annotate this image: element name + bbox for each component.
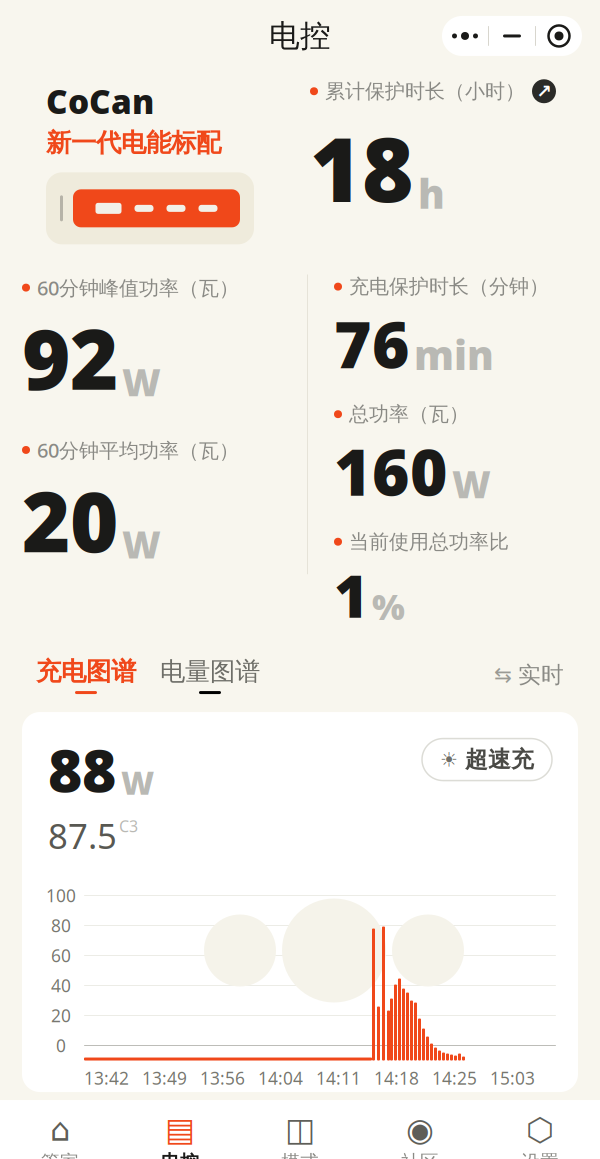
staticText: W bbox=[452, 459, 491, 509]
button[interactable]: Mini program menu bbox=[442, 16, 582, 56]
staticText: 14:25 bbox=[432, 1066, 477, 1089]
staticText: 电控 bbox=[161, 1151, 199, 1159]
staticText: 100 bbox=[46, 884, 76, 907]
staticText: 新一代电能标配 bbox=[46, 127, 221, 158]
staticText: 1 bbox=[334, 556, 368, 634]
button[interactable]: ☀ bbox=[422, 739, 552, 781]
staticText: W bbox=[122, 519, 161, 569]
staticText: 13:56 bbox=[200, 1066, 245, 1089]
staticText: CoCan bbox=[46, 79, 154, 123]
button[interactable]: ▤ bbox=[120, 1115, 240, 1159]
staticText: 管家 bbox=[41, 1151, 79, 1159]
staticText: 88 bbox=[48, 731, 116, 808]
staticText: ↗ bbox=[536, 81, 552, 102]
staticText: 模式 bbox=[281, 1151, 319, 1159]
staticText: 当前使用总功率比 bbox=[349, 529, 509, 554]
staticText: 60 bbox=[51, 944, 71, 967]
staticText: ⌂ bbox=[50, 1111, 70, 1148]
staticText: 14:18 bbox=[374, 1066, 419, 1089]
staticText: 充电图谱 bbox=[36, 656, 136, 687]
button[interactable]: 充电图谱 bbox=[36, 656, 136, 694]
staticText: 0 bbox=[56, 1034, 66, 1057]
staticText: 超速充 bbox=[465, 746, 534, 773]
button[interactable]: ⬡ bbox=[480, 1115, 600, 1159]
staticText: W bbox=[121, 761, 154, 803]
staticText: 电控 bbox=[269, 17, 331, 55]
staticText: ⇆ bbox=[494, 663, 512, 687]
button[interactable]: View details bbox=[532, 79, 556, 103]
staticText: 总功率（瓦） bbox=[349, 402, 469, 426]
staticText: 76 bbox=[334, 301, 410, 386]
staticText: 20 bbox=[51, 1004, 71, 1027]
staticText: ◫ bbox=[285, 1111, 315, 1148]
button[interactable]: ◉ bbox=[360, 1115, 480, 1159]
staticText: 累计保护时长（小时） bbox=[325, 79, 525, 104]
staticText: 60分钟平均功率（瓦） bbox=[37, 437, 239, 463]
staticText: h bbox=[418, 167, 445, 220]
staticText: 实时 bbox=[518, 661, 564, 689]
staticText: % bbox=[372, 583, 405, 629]
staticText: 14:04 bbox=[258, 1066, 303, 1089]
button[interactable]: 电量图谱 bbox=[136, 656, 260, 694]
staticText: 13:42 bbox=[84, 1066, 129, 1089]
staticText: min bbox=[414, 328, 494, 381]
staticText: 充电保护时长（分钟） bbox=[349, 274, 549, 299]
button[interactable]: ⌂ bbox=[0, 1115, 120, 1159]
staticText: C3 bbox=[119, 815, 138, 837]
staticText: ◉ bbox=[406, 1111, 434, 1148]
staticText: 60分钟峰值功率（瓦） bbox=[37, 274, 239, 301]
staticText: 13:49 bbox=[142, 1066, 187, 1089]
staticText: W bbox=[122, 357, 161, 406]
staticText: 87.5 bbox=[48, 812, 117, 858]
staticText: 40 bbox=[51, 974, 71, 997]
staticText: 社区 bbox=[401, 1151, 439, 1159]
staticText: 电量图谱 bbox=[160, 656, 260, 687]
staticText: 20 bbox=[22, 465, 118, 575]
staticText: 92 bbox=[22, 303, 118, 413]
staticText: ☀ bbox=[440, 748, 458, 771]
staticText: 160 bbox=[334, 428, 448, 513]
staticText: 设置 bbox=[521, 1151, 559, 1159]
button[interactable]: ◫ bbox=[240, 1115, 360, 1159]
staticText: ▤ bbox=[165, 1111, 195, 1148]
staticText: 15:03 bbox=[490, 1066, 535, 1089]
staticText: ⬡ bbox=[526, 1111, 554, 1148]
staticText: 18 bbox=[310, 109, 414, 226]
button[interactable]: ⇆ bbox=[494, 661, 564, 689]
staticText: 14:11 bbox=[316, 1066, 361, 1089]
staticText: 80 bbox=[51, 914, 71, 937]
